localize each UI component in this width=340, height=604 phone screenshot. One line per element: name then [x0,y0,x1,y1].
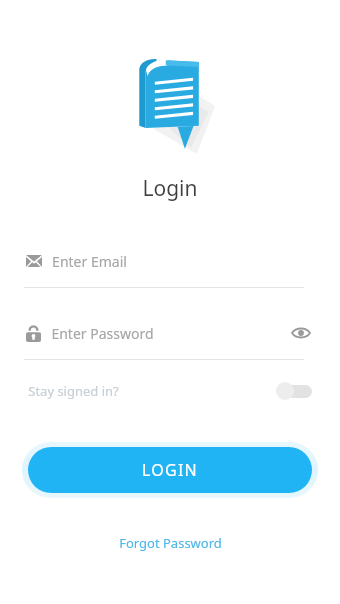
staticText: Login [142,174,198,203]
button[interactable]: Forgot Password [107,528,234,558]
button[interactable]: Enter Password [0,320,340,360]
button[interactable]: Enter Email [0,248,340,288]
button[interactable]: Stay signed in? [28,376,312,406]
staticText: Enter Password [51,324,154,343]
staticText: Forgot Password [119,534,222,552]
staticText: Stay signed in? [28,382,119,400]
other: Stay signed in toggle [276,382,312,400]
staticText: Enter Email [52,252,127,271]
staticText: LOGIN [142,459,198,481]
button[interactable]: Show password [288,320,314,346]
button[interactable]: LOGIN [28,447,312,493]
